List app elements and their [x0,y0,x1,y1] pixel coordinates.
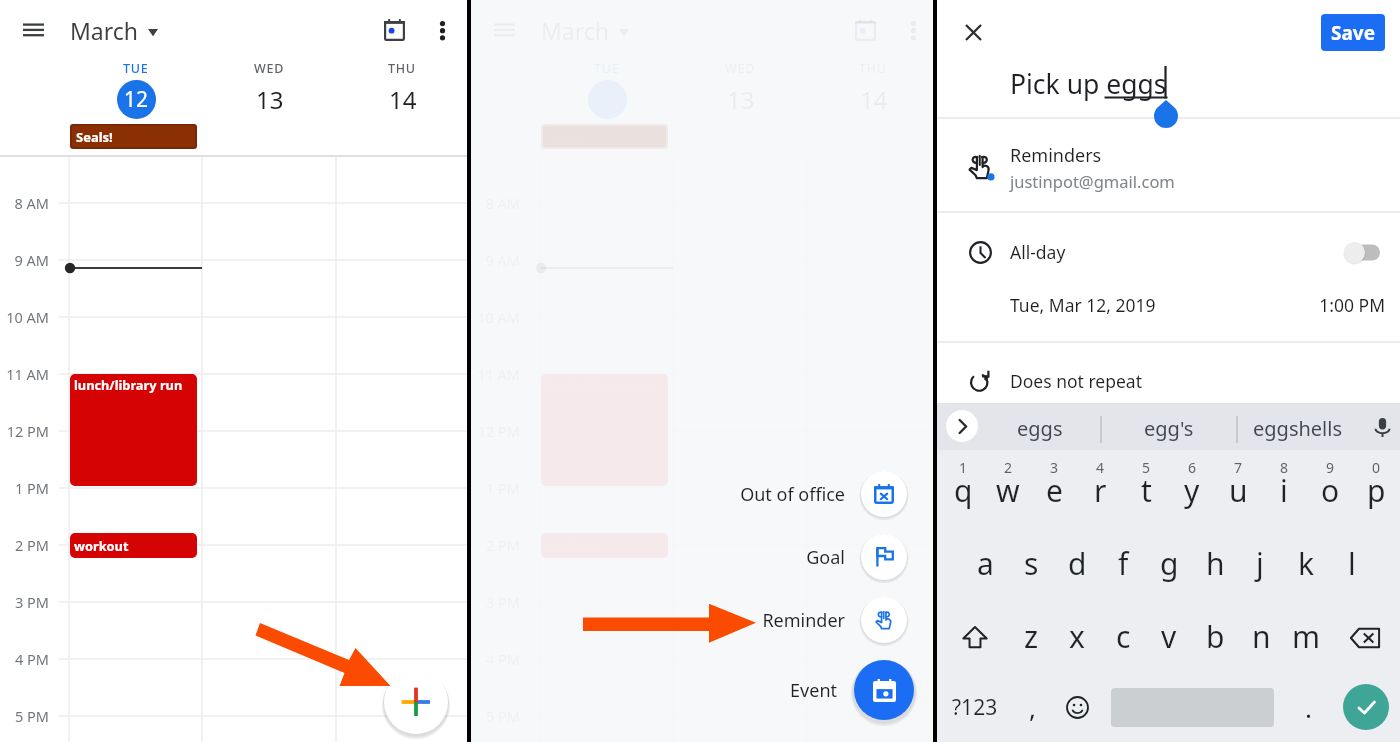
button[interactable]: 8 [1259,456,1309,478]
button[interactable]: Menu [11,8,55,52]
button[interactable]: Done [1343,684,1389,730]
button[interactable]: Create [384,670,448,734]
button[interactable]: , [1008,683,1056,731]
button[interactable]: j [1235,537,1285,589]
button[interactable]: Save [1321,14,1385,51]
button[interactable]: z [1006,610,1056,662]
button[interactable]: a [960,537,1010,589]
button[interactable]: Today [843,8,887,52]
staticText: v [1161,616,1177,657]
button[interactable]: 0 [1351,456,1400,478]
button[interactable]: Reminder [861,597,907,643]
button[interactable]: r [1075,464,1125,516]
staticText: r [1094,470,1107,511]
button[interactable]: Backspace [1341,614,1389,662]
button[interactable]: lunch/library run [70,374,197,486]
button[interactable]: u [1213,464,1263,516]
button[interactable]: c [1098,610,1148,662]
button[interactable]: n [1236,610,1286,662]
button[interactable]: Out of office [861,471,907,517]
staticText: 8 AM [0,193,49,213]
staticText: u [1229,470,1248,511]
staticText: x [1069,616,1085,657]
button[interactable]: eggs [978,408,1102,448]
button[interactable]: w [983,464,1033,516]
button[interactable]: b [1190,610,1240,662]
button[interactable]: s [1006,537,1056,589]
staticText: , [1029,690,1036,725]
button[interactable]: ?123 [946,683,1004,731]
button[interactable]: WED [229,60,309,119]
button[interactable]: Voice input [1366,411,1398,443]
staticText: a [977,543,994,584]
button[interactable]: All-day toggle [1341,236,1389,270]
button[interactable]: d [1052,537,1102,589]
button[interactable]: egg's [1107,408,1231,448]
staticText: i [1280,470,1288,511]
button[interactable]: Goal [861,534,907,580]
button[interactable]: k [1281,537,1331,589]
button[interactable]: 1 [938,456,988,478]
button[interactable]: Seals! [70,124,197,149]
button[interactable]: y [1167,464,1217,516]
staticText: 14 [389,83,417,116]
button[interactable]: Shift [951,614,999,662]
staticText: eggs [1017,415,1063,442]
staticText: f [1118,543,1129,584]
staticText: y [1184,470,1200,511]
button[interactable]: 6 [1167,456,1217,478]
button[interactable]: p [1351,464,1400,516]
button[interactable]: THU [362,60,442,119]
button[interactable]: Seals! [541,124,668,149]
button[interactable]: Close [953,12,994,53]
button[interactable]: 5 [1121,456,1171,478]
button[interactable]: t [1121,464,1171,516]
button[interactable]: f [1098,537,1148,589]
button[interactable]: Emoji [1053,683,1101,731]
button[interactable]: i [1259,464,1309,516]
staticText: 10 AM [0,307,49,327]
button[interactable]: eggshells [1235,408,1359,448]
button[interactable]: workout [70,533,197,558]
staticText: l [1348,543,1356,584]
button[interactable]: h [1190,537,1240,589]
button[interactable]: Today [372,8,416,52]
staticText: 3 PM [0,592,49,612]
button[interactable]: Event [854,660,914,720]
button[interactable]: x [1052,610,1102,662]
button[interactable]: . [1284,683,1332,731]
button[interactable]: TUE [96,60,176,119]
button[interactable]: 3 [1029,456,1079,478]
button[interactable]: 9 [1305,456,1355,478]
button[interactable]: l [1327,537,1377,589]
button[interactable]: q [938,464,988,516]
button[interactable]: More options [424,12,460,48]
button[interactable]: 4 [1075,456,1125,478]
staticText: THU [388,60,416,77]
staticText: TUE [123,60,149,77]
button[interactable]: 2 [983,456,1033,478]
button[interactable]: TUE [567,60,647,119]
staticText: Does not repeat [1010,369,1142,393]
button[interactable]: 7 [1213,456,1263,478]
button[interactable]: g [1144,537,1194,589]
button[interactable]: More suggestions [946,410,978,442]
button[interactable]: m [1281,610,1331,662]
staticText: d [1068,543,1087,584]
button[interactable]: March [70,15,158,46]
button[interactable]: v [1144,610,1194,662]
button[interactable]: e [1029,464,1079,516]
staticText: z [1024,616,1039,657]
staticText: March [70,15,139,46]
button[interactable]: March [541,15,629,46]
button[interactable]: o [1305,464,1355,516]
